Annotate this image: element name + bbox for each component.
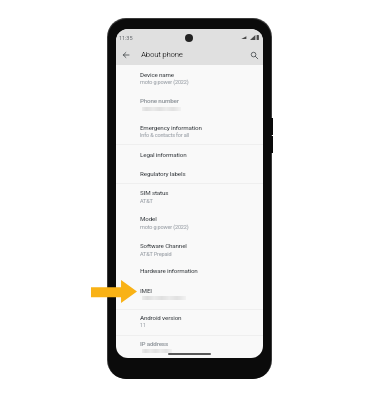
staticText: moto g power (2022) [140, 224, 189, 230]
button[interactable]: Search [248, 49, 260, 61]
button[interactable]: Regulatory labels [140, 170, 186, 177]
button[interactable]: Phone number [140, 97, 179, 104]
button[interactable]: Android version [140, 314, 182, 321]
button[interactable]: Legal information [140, 151, 187, 158]
button[interactable]: SIM status [140, 189, 169, 196]
button[interactable]: Back [120, 49, 132, 61]
staticText: Info & contacts for all [140, 132, 189, 138]
button[interactable]: IMEI [140, 287, 152, 294]
button[interactable]: IP address [140, 340, 168, 347]
staticText: AT&T Prepaid [140, 251, 172, 257]
button[interactable]: Hardware information [140, 267, 198, 274]
staticText: 11:35 [119, 35, 133, 42]
button[interactable]: Model [140, 215, 157, 222]
button[interactable]: Software Channel [140, 242, 187, 249]
button[interactable]: Emergency information [140, 124, 202, 131]
staticText: moto g power (2022) [140, 79, 189, 85]
button[interactable]: About phone [141, 50, 183, 59]
staticText: AT&T [140, 198, 153, 204]
staticText: 11 [140, 322, 146, 328]
button[interactable]: Device name [140, 71, 175, 78]
